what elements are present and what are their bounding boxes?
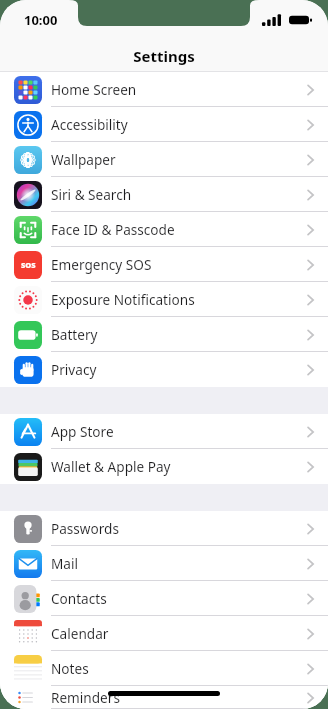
button[interactable]: Exposure Notifications xyxy=(0,282,328,317)
button[interactable]: Reminders xyxy=(0,686,328,709)
staticText: Reminders xyxy=(51,688,120,707)
staticText: SOS xyxy=(21,260,36,270)
staticText: Siri & Search xyxy=(51,185,132,204)
staticText: Wallpaper xyxy=(51,150,116,169)
staticText: Battery xyxy=(51,325,98,344)
button[interactable]: App Store xyxy=(0,414,328,449)
button[interactable]: Contacts xyxy=(0,581,328,616)
staticText: Accessibility xyxy=(51,115,128,134)
staticText: Passwords xyxy=(51,519,119,538)
staticText: Settings xyxy=(133,46,195,66)
button[interactable]: Wallpaper xyxy=(0,142,328,177)
button[interactable]: Accessibility xyxy=(0,107,328,142)
button[interactable]: Battery xyxy=(0,317,328,352)
staticText: Home Screen xyxy=(51,80,137,99)
button[interactable]: Calendar xyxy=(0,616,328,651)
staticText: Emergency SOS xyxy=(51,255,152,274)
staticText: App Store xyxy=(51,422,114,441)
staticText: Calendar xyxy=(51,624,109,643)
staticText: Notes xyxy=(51,659,89,678)
staticText: 10:00 xyxy=(24,11,58,29)
button[interactable]: Notes xyxy=(0,651,328,686)
staticText: Exposure Notifications xyxy=(51,290,195,309)
staticText: Wallet & Apple Pay xyxy=(51,457,171,476)
button[interactable]: Passwords xyxy=(0,511,328,546)
button[interactable]: Face ID & Passcode xyxy=(0,212,328,247)
staticText: Mail xyxy=(51,554,78,573)
button[interactable]: Siri & Search xyxy=(0,177,328,212)
button[interactable]: Home Screen xyxy=(0,72,328,107)
staticText: Contacts xyxy=(51,589,107,608)
button[interactable]: Privacy xyxy=(0,352,328,387)
staticText: Face ID & Passcode xyxy=(51,220,175,239)
button[interactable]: Mail xyxy=(0,546,328,581)
button[interactable]: SOS xyxy=(0,247,328,282)
button[interactable]: Wallet & Apple Pay xyxy=(0,449,328,484)
staticText: Privacy xyxy=(51,360,97,379)
